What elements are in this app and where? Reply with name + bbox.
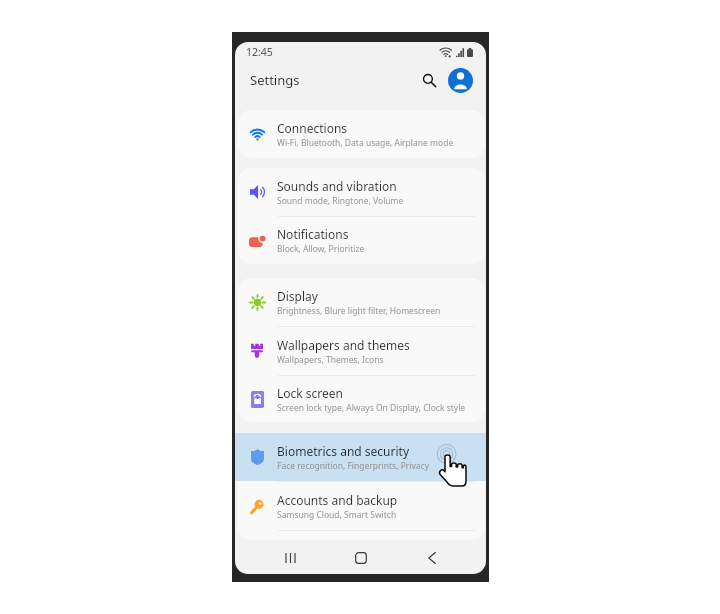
button[interactable]: Display — [238, 278, 485, 326]
button[interactable]: Notifications — [238, 217, 485, 264]
button[interactable]: Recent apps — [275, 543, 306, 573]
button[interactable]: Accounts and backup — [238, 482, 485, 530]
button[interactable]: Biometrics and security — [238, 433, 485, 481]
button[interactable] — [235, 433, 486, 481]
button[interactable]: Sounds and vibration — [238, 168, 485, 216]
staticText: 12:45 — [246, 45, 273, 59]
staticText: Settings — [250, 71, 300, 89]
button[interactable]: Wallpapers and themes — [238, 327, 485, 375]
staticText: Accounts and backup — [277, 492, 398, 508]
staticText: Wallpapers, Themes, Icons — [277, 354, 384, 366]
staticText: Notifications — [277, 226, 349, 242]
staticText: Face recognition, Fingerprints, Privacy — [277, 460, 429, 472]
staticText: Block, Allow, Prioritize — [277, 243, 365, 255]
staticText: Display — [277, 288, 318, 304]
button[interactable]: Lock screen — [238, 376, 485, 422]
staticText: Face recognition, Fingerprints, Privacy — [277, 460, 429, 472]
staticText: Lock screen — [277, 385, 344, 401]
button[interactable]: Account — [448, 68, 473, 93]
staticText: Biometrics and security — [277, 443, 410, 459]
staticText: Wi-Fi, Bluetooth, Data usage, Airplane m… — [277, 137, 454, 149]
staticText: Sounds and vibration — [277, 178, 397, 194]
staticText: Samsung Cloud, Smart Switch — [277, 509, 397, 521]
staticText: Brightness, Blure light filter, Homescre… — [277, 305, 441, 317]
button[interactable]: Search — [416, 67, 442, 93]
staticText: Sound mode, Ringtone, Volume — [277, 195, 404, 207]
staticText: Connections — [277, 120, 348, 136]
button[interactable]: Home — [345, 543, 376, 573]
button[interactable]: Biometrics and security — [238, 433, 485, 481]
other: Tap pointer — [437, 444, 469, 488]
button[interactable]: Back — [416, 543, 447, 573]
staticText: Screen lock type, Always On Display, Clo… — [277, 402, 466, 414]
staticText: Biometrics and security — [277, 443, 410, 459]
button[interactable]: Connections — [238, 110, 485, 158]
staticText: Wallpapers and themes — [277, 337, 410, 353]
